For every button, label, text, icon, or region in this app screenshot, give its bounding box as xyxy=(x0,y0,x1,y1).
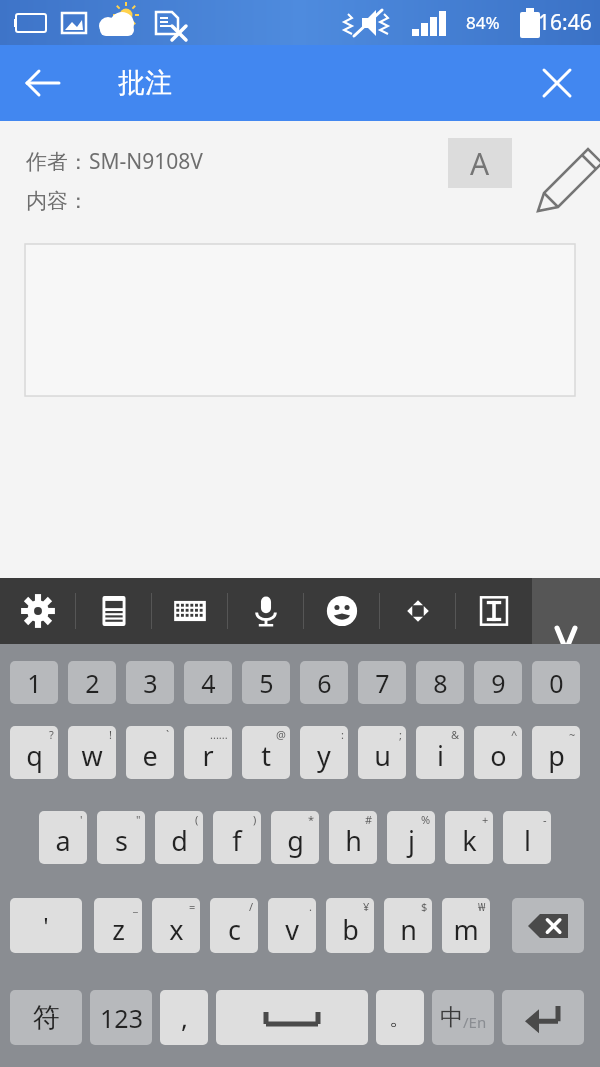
staticText: s xyxy=(115,822,128,859)
staticText: v xyxy=(285,911,299,948)
button[interactable]: Back xyxy=(14,54,72,112)
staticText: ₩ xyxy=(478,899,486,914)
button[interactable]: / xyxy=(210,898,258,953)
staticText: / xyxy=(249,899,254,914)
staticText: @ xyxy=(276,727,286,742)
button[interactable]: Move cursor xyxy=(380,578,455,644)
staticText: y xyxy=(317,737,331,774)
staticText: : xyxy=(341,727,344,742)
staticText: 内容： xyxy=(26,188,89,214)
button[interactable]: 9 xyxy=(474,661,522,704)
button[interactable]: ...... xyxy=(184,726,232,779)
button[interactable]: Text style xyxy=(448,138,512,188)
button[interactable]: ~ xyxy=(532,726,580,779)
staticText: q xyxy=(26,737,43,774)
button[interactable]: Voice input xyxy=(228,578,303,644)
button[interactable]: Emoji xyxy=(304,578,379,644)
button[interactable]: Enter xyxy=(502,990,584,1045)
staticText: k xyxy=(462,822,477,859)
staticText: ? xyxy=(49,727,54,742)
button[interactable]: = xyxy=(152,898,200,953)
staticText: " xyxy=(136,812,141,827)
staticText: A xyxy=(470,143,490,184)
button[interactable]: ¥ xyxy=(326,898,374,953)
staticText: 符 xyxy=(33,1001,60,1035)
staticText: m xyxy=(453,911,479,948)
button[interactable]: . xyxy=(268,898,316,953)
staticText: l xyxy=(524,822,531,859)
button[interactable]: & xyxy=(416,726,464,779)
button[interactable]: % xyxy=(387,811,435,864)
staticText: = xyxy=(189,899,196,914)
button[interactable]: Space xyxy=(216,990,368,1045)
staticText: 16:46 xyxy=(538,8,592,37)
button[interactable]: Switch language xyxy=(432,990,494,1045)
button[interactable]: 2 xyxy=(68,661,116,704)
button[interactable]: 。 xyxy=(376,990,424,1045)
staticText: 批注 xyxy=(118,66,172,100)
button[interactable]: Keyboard xyxy=(152,578,227,644)
staticText: ^ xyxy=(511,727,518,742)
staticText: 6 xyxy=(317,666,332,700)
button[interactable]: Clipboard xyxy=(76,578,151,644)
button[interactable]: ? xyxy=(10,726,58,779)
staticText: x xyxy=(169,911,184,948)
button[interactable]: Hide keyboard xyxy=(532,578,600,644)
button[interactable]: 符 xyxy=(10,990,82,1045)
staticText: u xyxy=(374,737,391,774)
button[interactable]: : xyxy=(300,726,348,779)
staticText: ! xyxy=(109,727,112,742)
button[interactable]: 1 xyxy=(10,661,58,704)
button[interactable]: Edit xyxy=(524,135,580,191)
button[interactable]: ^ xyxy=(474,726,522,779)
button[interactable]: ) xyxy=(213,811,261,864)
button[interactable]: _ xyxy=(94,898,142,953)
button[interactable]: 123 xyxy=(90,990,152,1045)
staticText: g xyxy=(287,822,304,859)
staticText: n xyxy=(400,911,417,948)
staticText: . xyxy=(309,899,312,914)
button[interactable]: ' xyxy=(39,811,87,864)
button[interactable]: 0 xyxy=(532,661,580,704)
button[interactable]: 5 xyxy=(242,661,290,704)
button[interactable]: Text edit xyxy=(456,578,531,644)
button[interactable]: , xyxy=(160,990,208,1045)
staticText: 作者：SM-N9108V xyxy=(26,147,203,176)
button[interactable]: 7 xyxy=(358,661,406,704)
button[interactable]: ! xyxy=(68,726,116,779)
staticText: & xyxy=(451,727,460,742)
button[interactable]: ₩ xyxy=(442,898,490,953)
staticText: $ xyxy=(421,899,428,914)
button[interactable]: + xyxy=(445,811,493,864)
staticText: _ xyxy=(133,899,138,914)
button[interactable]: 6 xyxy=(300,661,348,704)
button[interactable]: ; xyxy=(358,726,406,779)
button[interactable]: Settings xyxy=(0,578,75,644)
staticText: h xyxy=(345,822,362,859)
staticText: ( xyxy=(195,812,199,827)
button[interactable]: Close xyxy=(528,54,586,112)
button[interactable]: # xyxy=(329,811,377,864)
staticText: 。 xyxy=(389,1004,411,1032)
button[interactable]: ( xyxy=(155,811,203,864)
staticText: f xyxy=(232,822,242,859)
button[interactable]: Comment text field xyxy=(25,244,575,396)
button[interactable]: Backspace xyxy=(512,898,584,953)
button[interactable]: ` xyxy=(126,726,174,779)
button[interactable]: @ xyxy=(242,726,290,779)
staticText: /En xyxy=(463,1012,487,1032)
button[interactable]: 8 xyxy=(416,661,464,704)
button[interactable]: * xyxy=(271,811,319,864)
button[interactable]: 4 xyxy=(184,661,232,704)
button[interactable]: $ xyxy=(384,898,432,953)
button[interactable]: ' xyxy=(10,898,82,953)
staticText: p xyxy=(548,737,565,774)
staticText: 4 xyxy=(201,666,216,700)
staticText: z xyxy=(112,911,125,948)
button[interactable]: 3 xyxy=(126,661,174,704)
button[interactable]: " xyxy=(97,811,145,864)
staticText: 0 xyxy=(549,666,564,700)
staticText: e xyxy=(142,737,158,774)
button[interactable]: - xyxy=(503,811,551,864)
staticText: ...... xyxy=(210,727,228,742)
